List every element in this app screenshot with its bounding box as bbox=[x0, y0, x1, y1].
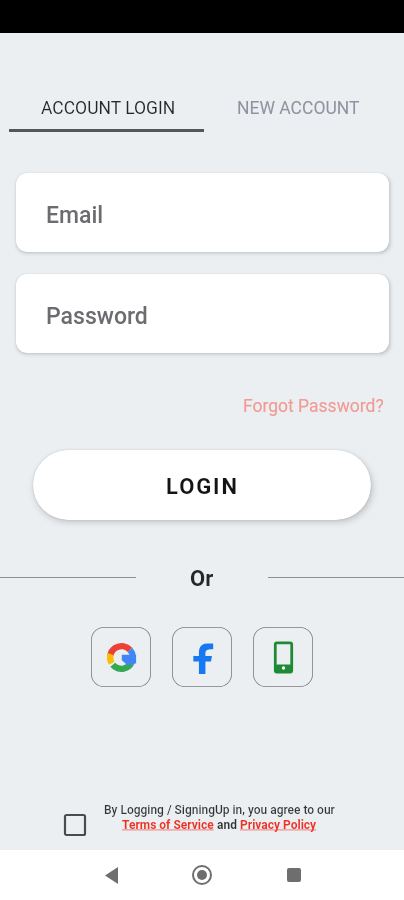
button[interactable]: Terms of Service bbox=[122, 818, 214, 832]
button[interactable]: Home bbox=[172, 850, 232, 900]
button[interactable]: LOGIN bbox=[33, 450, 371, 520]
button[interactable]: Password bbox=[16, 274, 389, 353]
button[interactable]: NEW ACCOUNT bbox=[209, 85, 388, 131]
button[interactable]: Sign in with Facebook bbox=[172, 627, 232, 687]
staticText: Email bbox=[46, 202, 104, 229]
button[interactable]: Privacy Policy bbox=[240, 818, 317, 832]
button[interactable]: ACCOUNT LOGIN bbox=[6, 85, 211, 131]
button[interactable]: Accept terms and conditions bbox=[65, 815, 85, 835]
staticText: ACCOUNT LOGIN bbox=[41, 98, 176, 119]
staticText: NEW ACCOUNT bbox=[237, 98, 360, 119]
staticText: By Logging / SigningUp in, you agree to … bbox=[104, 803, 335, 817]
staticText: Password bbox=[46, 303, 148, 330]
staticText: and bbox=[214, 818, 240, 832]
staticText: Forgot Password? bbox=[243, 396, 384, 417]
button[interactable]: Sign in with phone number bbox=[253, 627, 313, 687]
staticText: Or bbox=[190, 566, 214, 592]
button[interactable]: Recent apps bbox=[264, 850, 324, 900]
button[interactable]: Email bbox=[16, 173, 389, 252]
button[interactable]: Sign in with Google bbox=[91, 627, 151, 687]
staticText: LOGIN bbox=[166, 474, 239, 500]
button[interactable]: Forgot Password? bbox=[238, 391, 389, 422]
button[interactable]: Back bbox=[81, 850, 141, 900]
